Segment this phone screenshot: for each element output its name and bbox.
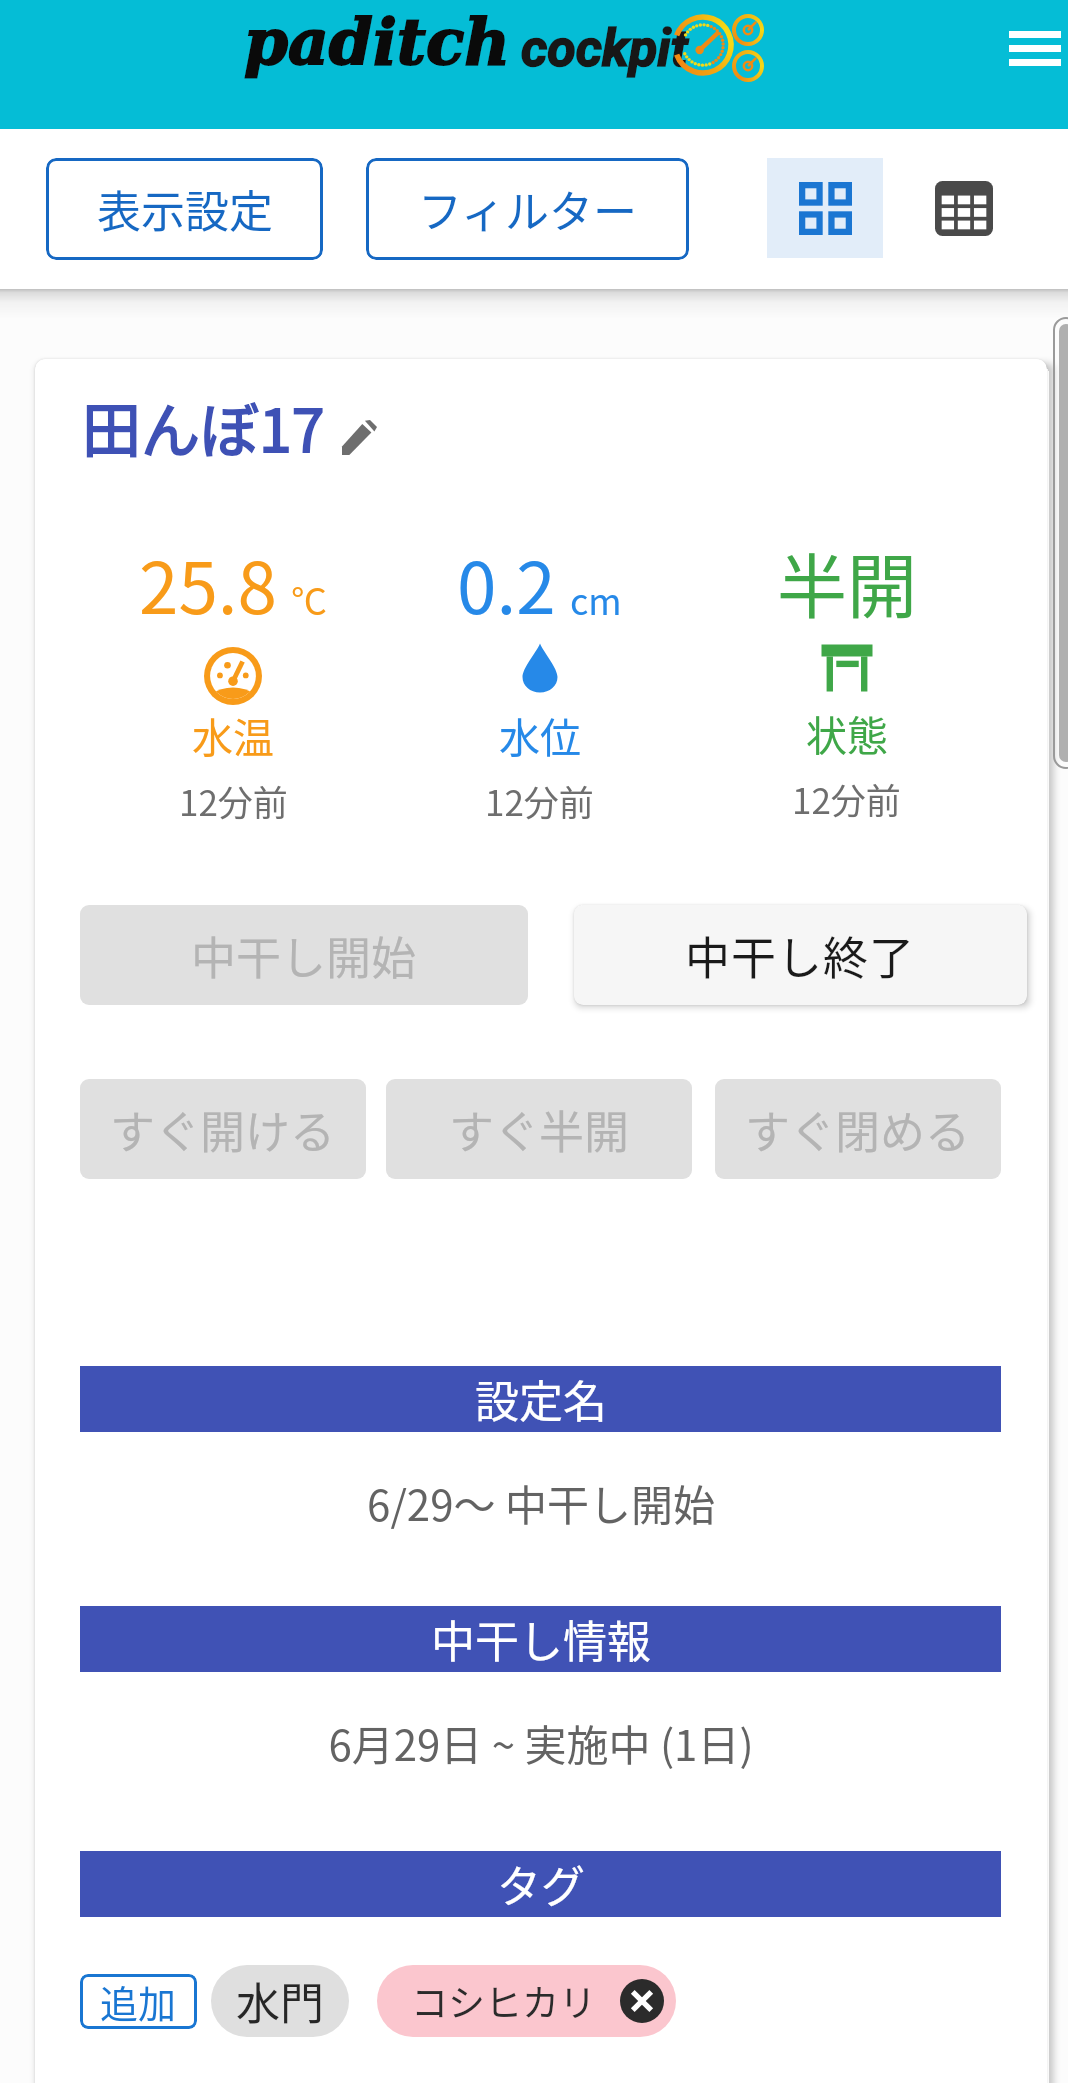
button[interactable]: Table view [906, 158, 1022, 258]
button[interactable]: すぐ半開 [386, 1079, 692, 1179]
staticText: 半開 [777, 532, 917, 633]
button[interactable]: Grid view [767, 158, 883, 258]
staticText: フィルター [418, 177, 638, 241]
staticText: タグ [497, 1852, 585, 1916]
button[interactable]: すぐ開ける [80, 1079, 366, 1179]
staticText: 6月29日 ~ 実施中 (1日) [328, 1712, 754, 1773]
button[interactable]: 水門 [211, 1965, 349, 2037]
button[interactable]: 表示設定 [46, 158, 323, 260]
button[interactable]: コシヒカリ [411, 1965, 664, 2037]
staticText: 12分前 [179, 775, 288, 826]
staticText: 表示設定 [97, 177, 273, 241]
staticText: ℃ [291, 573, 328, 625]
staticText: 水門 [236, 1969, 324, 2033]
staticText: 中干し情報 [431, 1607, 651, 1671]
button[interactable]: 設定名 [80, 1366, 1001, 1432]
staticText: 0.2 [457, 532, 556, 635]
staticText: 25.8 [139, 532, 277, 635]
staticText: 12分前 [792, 773, 901, 824]
staticText: 中干し終了 [685, 923, 916, 988]
button[interactable]: 中干し情報 [80, 1606, 1001, 1672]
staticText: 6/29〜 中干し開始 [367, 1472, 715, 1533]
button[interactable]: Remove tag [620, 1979, 664, 2023]
button[interactable]: タグ [80, 1851, 1001, 1917]
staticText: 水温 [192, 705, 274, 764]
button[interactable]: 追加 [80, 1974, 197, 2029]
staticText: 状態 [806, 703, 888, 762]
button[interactable]: フィルター [366, 158, 689, 260]
staticText: 12分前 [485, 775, 594, 826]
staticText: paditch [244, 5, 511, 79]
staticText: 田んぼ17 [82, 384, 325, 469]
staticText: 中干し開始 [191, 923, 417, 988]
button[interactable]: Edit name [342, 420, 377, 455]
button[interactable]: Menu [1000, 20, 1068, 70]
staticText: コシヒカリ [411, 1974, 596, 2028]
staticText: すぐ開ける [110, 1097, 336, 1162]
button[interactable]: 中干し終了 [574, 905, 1027, 1005]
staticText: cm [570, 573, 622, 625]
staticText: すぐ閉める [745, 1097, 971, 1162]
button[interactable]: 中干し開始 [80, 905, 528, 1005]
staticText: cockpit [521, 18, 688, 79]
staticText: 追加 [100, 1974, 177, 2029]
staticText: 設定名 [475, 1367, 607, 1431]
staticText: 水位 [499, 705, 581, 764]
button[interactable]: すぐ閉める [715, 1079, 1001, 1179]
staticText: すぐ半開 [449, 1097, 630, 1162]
